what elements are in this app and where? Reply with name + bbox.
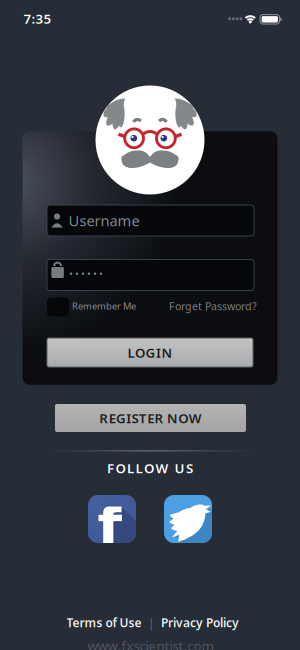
button[interactable]: LOGIN — [47, 338, 253, 367]
staticText: 7:35 — [23, 10, 51, 27]
button[interactable]: REGISTER NOW — [55, 404, 246, 432]
staticText: | — [147, 614, 154, 631]
button[interactable]: Privacy Policy — [161, 614, 239, 630]
button[interactable]: Facebook — [88, 495, 136, 543]
staticText: Privacy Policy — [161, 614, 239, 630]
button[interactable]: Twitter — [164, 495, 212, 543]
button[interactable]: Terms of Use — [66, 614, 141, 630]
staticText: Username — [68, 211, 139, 230]
button[interactable]: Remember Me — [0, 0, 300, 650]
staticText: REGISTER NOW — [99, 409, 202, 427]
staticText: LOGIN — [127, 344, 172, 361]
staticText: Forget Password? — [169, 299, 257, 313]
staticText: www.fxscientist.com — [87, 637, 213, 650]
staticText: FOLLOW US — [107, 459, 193, 477]
button[interactable]: Forget Password? — [0, 0, 300, 650]
staticText: Terms of Use — [66, 614, 141, 630]
staticText: Remember Me — [72, 300, 136, 312]
